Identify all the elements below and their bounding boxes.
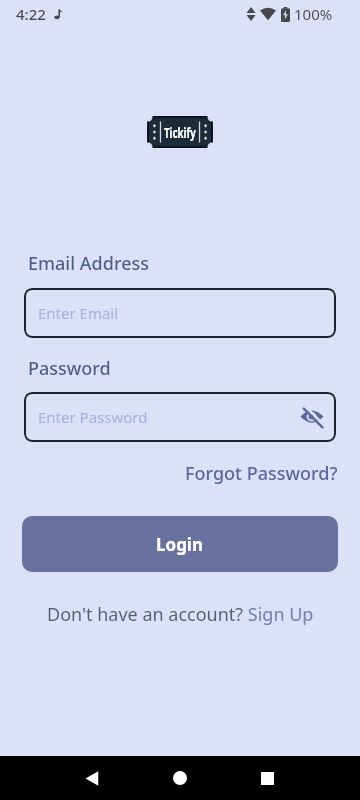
staticText: Enter Password [38,407,148,427]
staticText: 100% [294,4,333,24]
button[interactable] [299,404,325,430]
button[interactable]: Enter Password [24,392,336,442]
button[interactable]: Enter Email [24,288,336,338]
staticText: Tickify [164,123,196,142]
button[interactable]: Login [22,516,338,572]
button[interactable] [173,771,187,785]
staticText: Login [156,533,204,556]
staticText: Password [28,356,111,381]
staticText: Email Address [28,251,149,276]
staticText: 4:22 [16,4,46,24]
staticText: Enter Email [38,303,119,323]
staticText: Don't have an account? Sign Up [47,602,314,627]
button[interactable]: Don't have an account? Sign Up [0,602,360,627]
button[interactable]: Forgot Password? [185,461,338,486]
button[interactable] [84,771,99,786]
